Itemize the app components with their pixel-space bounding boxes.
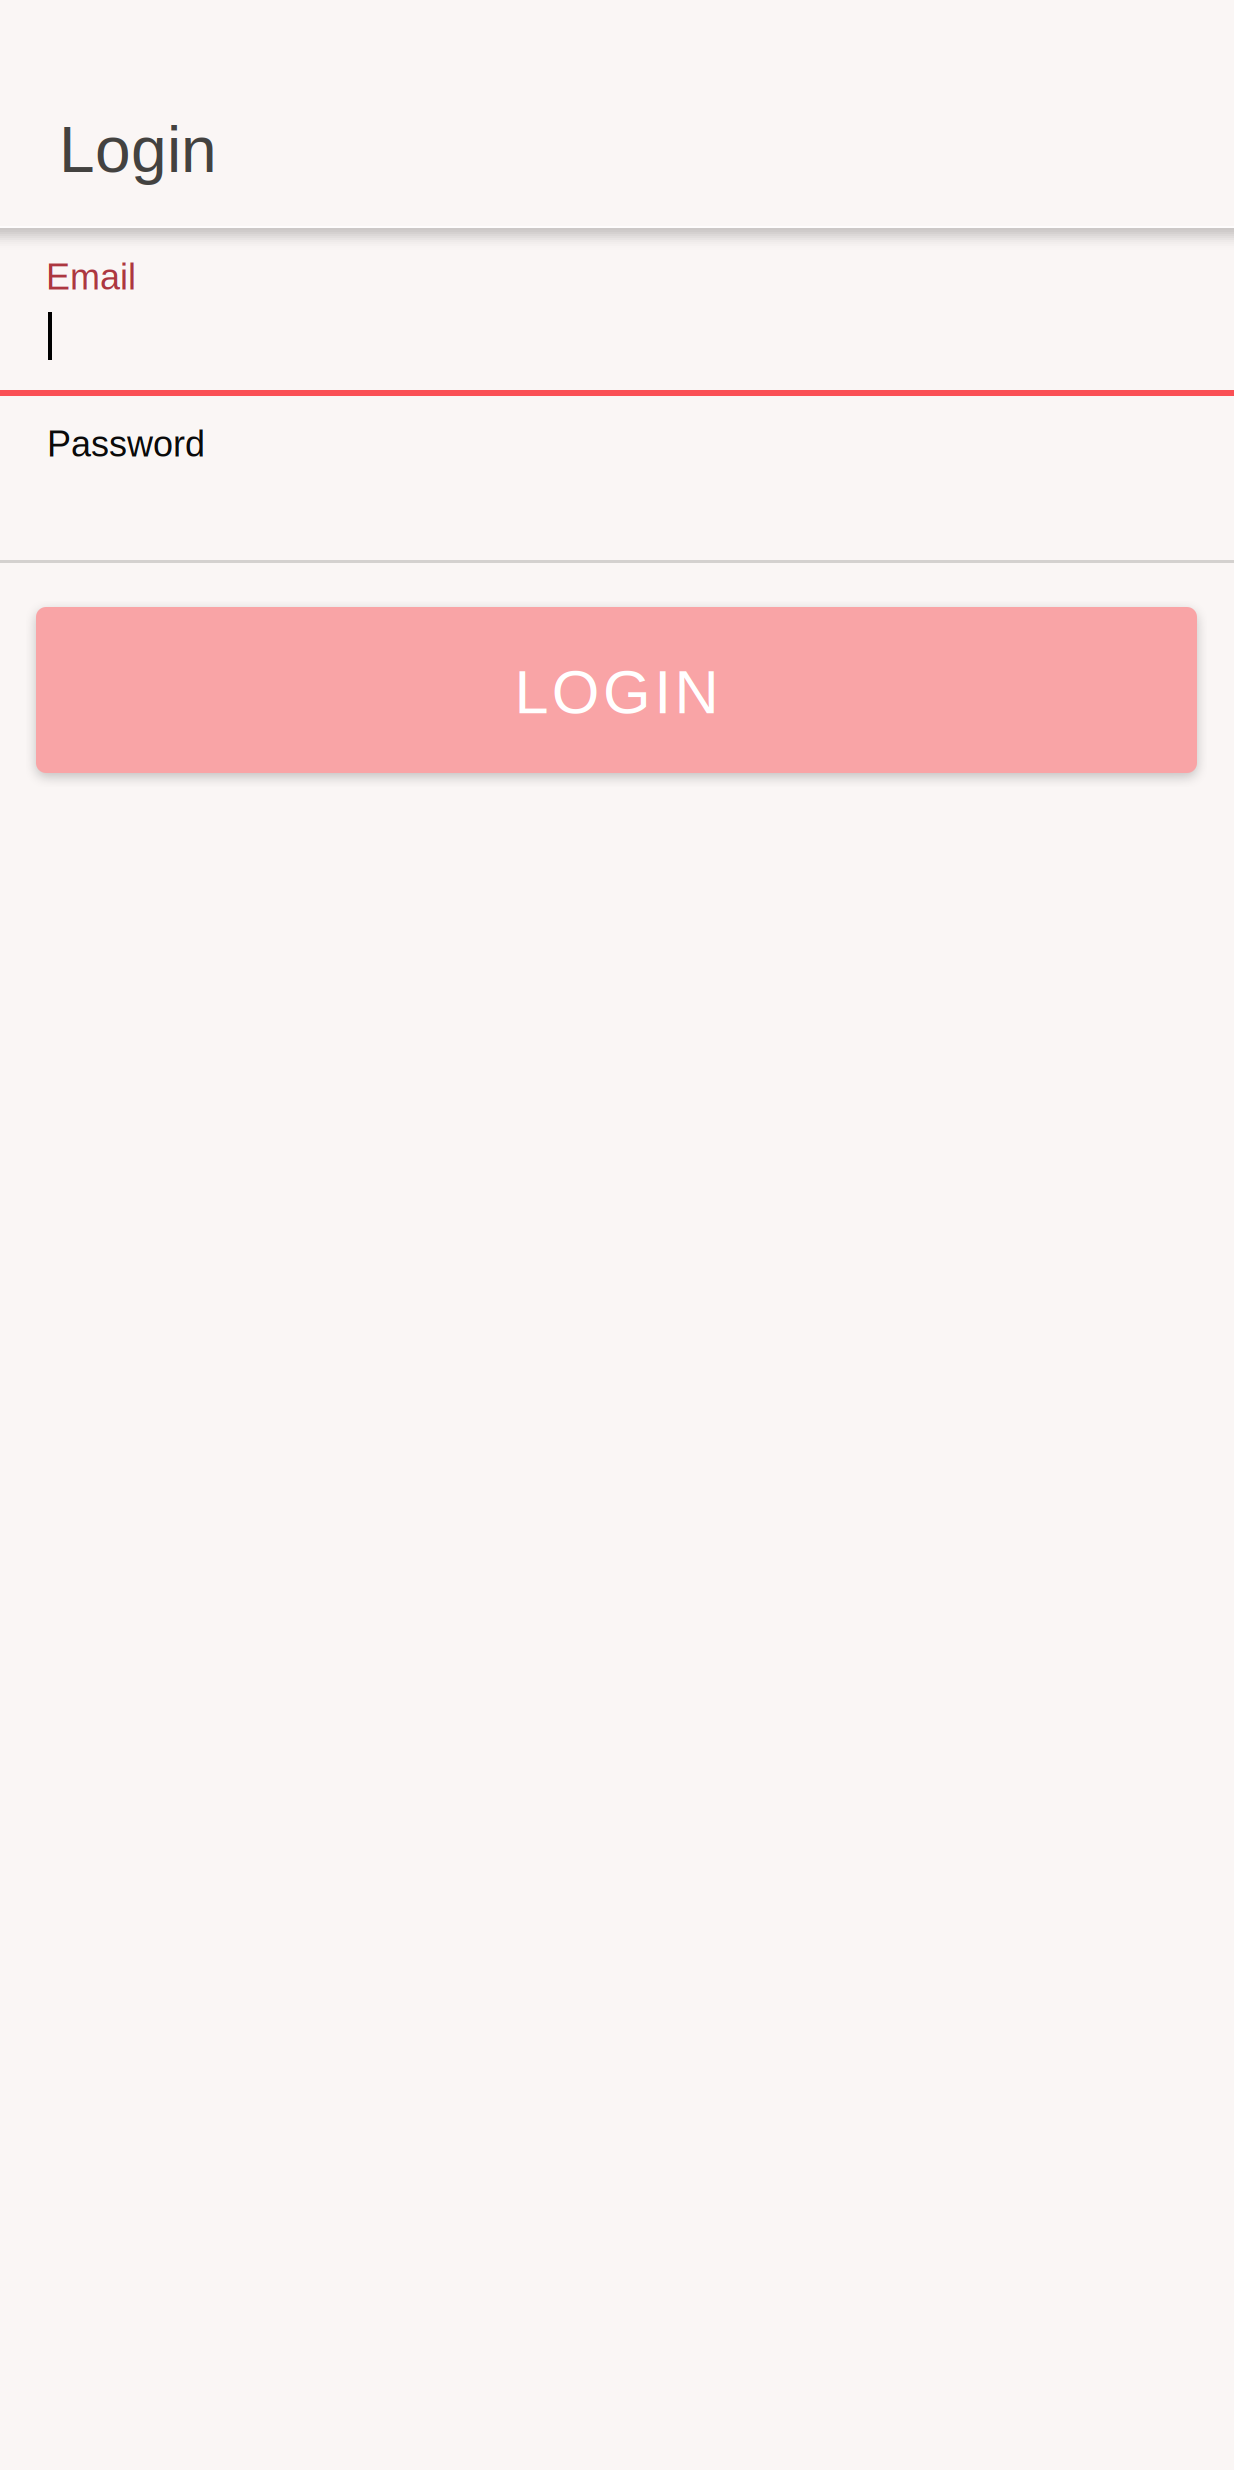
button[interactable]: Email [0,228,1234,396]
staticText: Password [47,424,205,464]
staticText: LOGIN [514,658,719,726]
button[interactable]: LOGIN [36,607,1197,773]
button[interactable]: Password [0,396,1234,563]
staticText: Login [59,114,217,185]
staticText: Email [46,257,136,297]
